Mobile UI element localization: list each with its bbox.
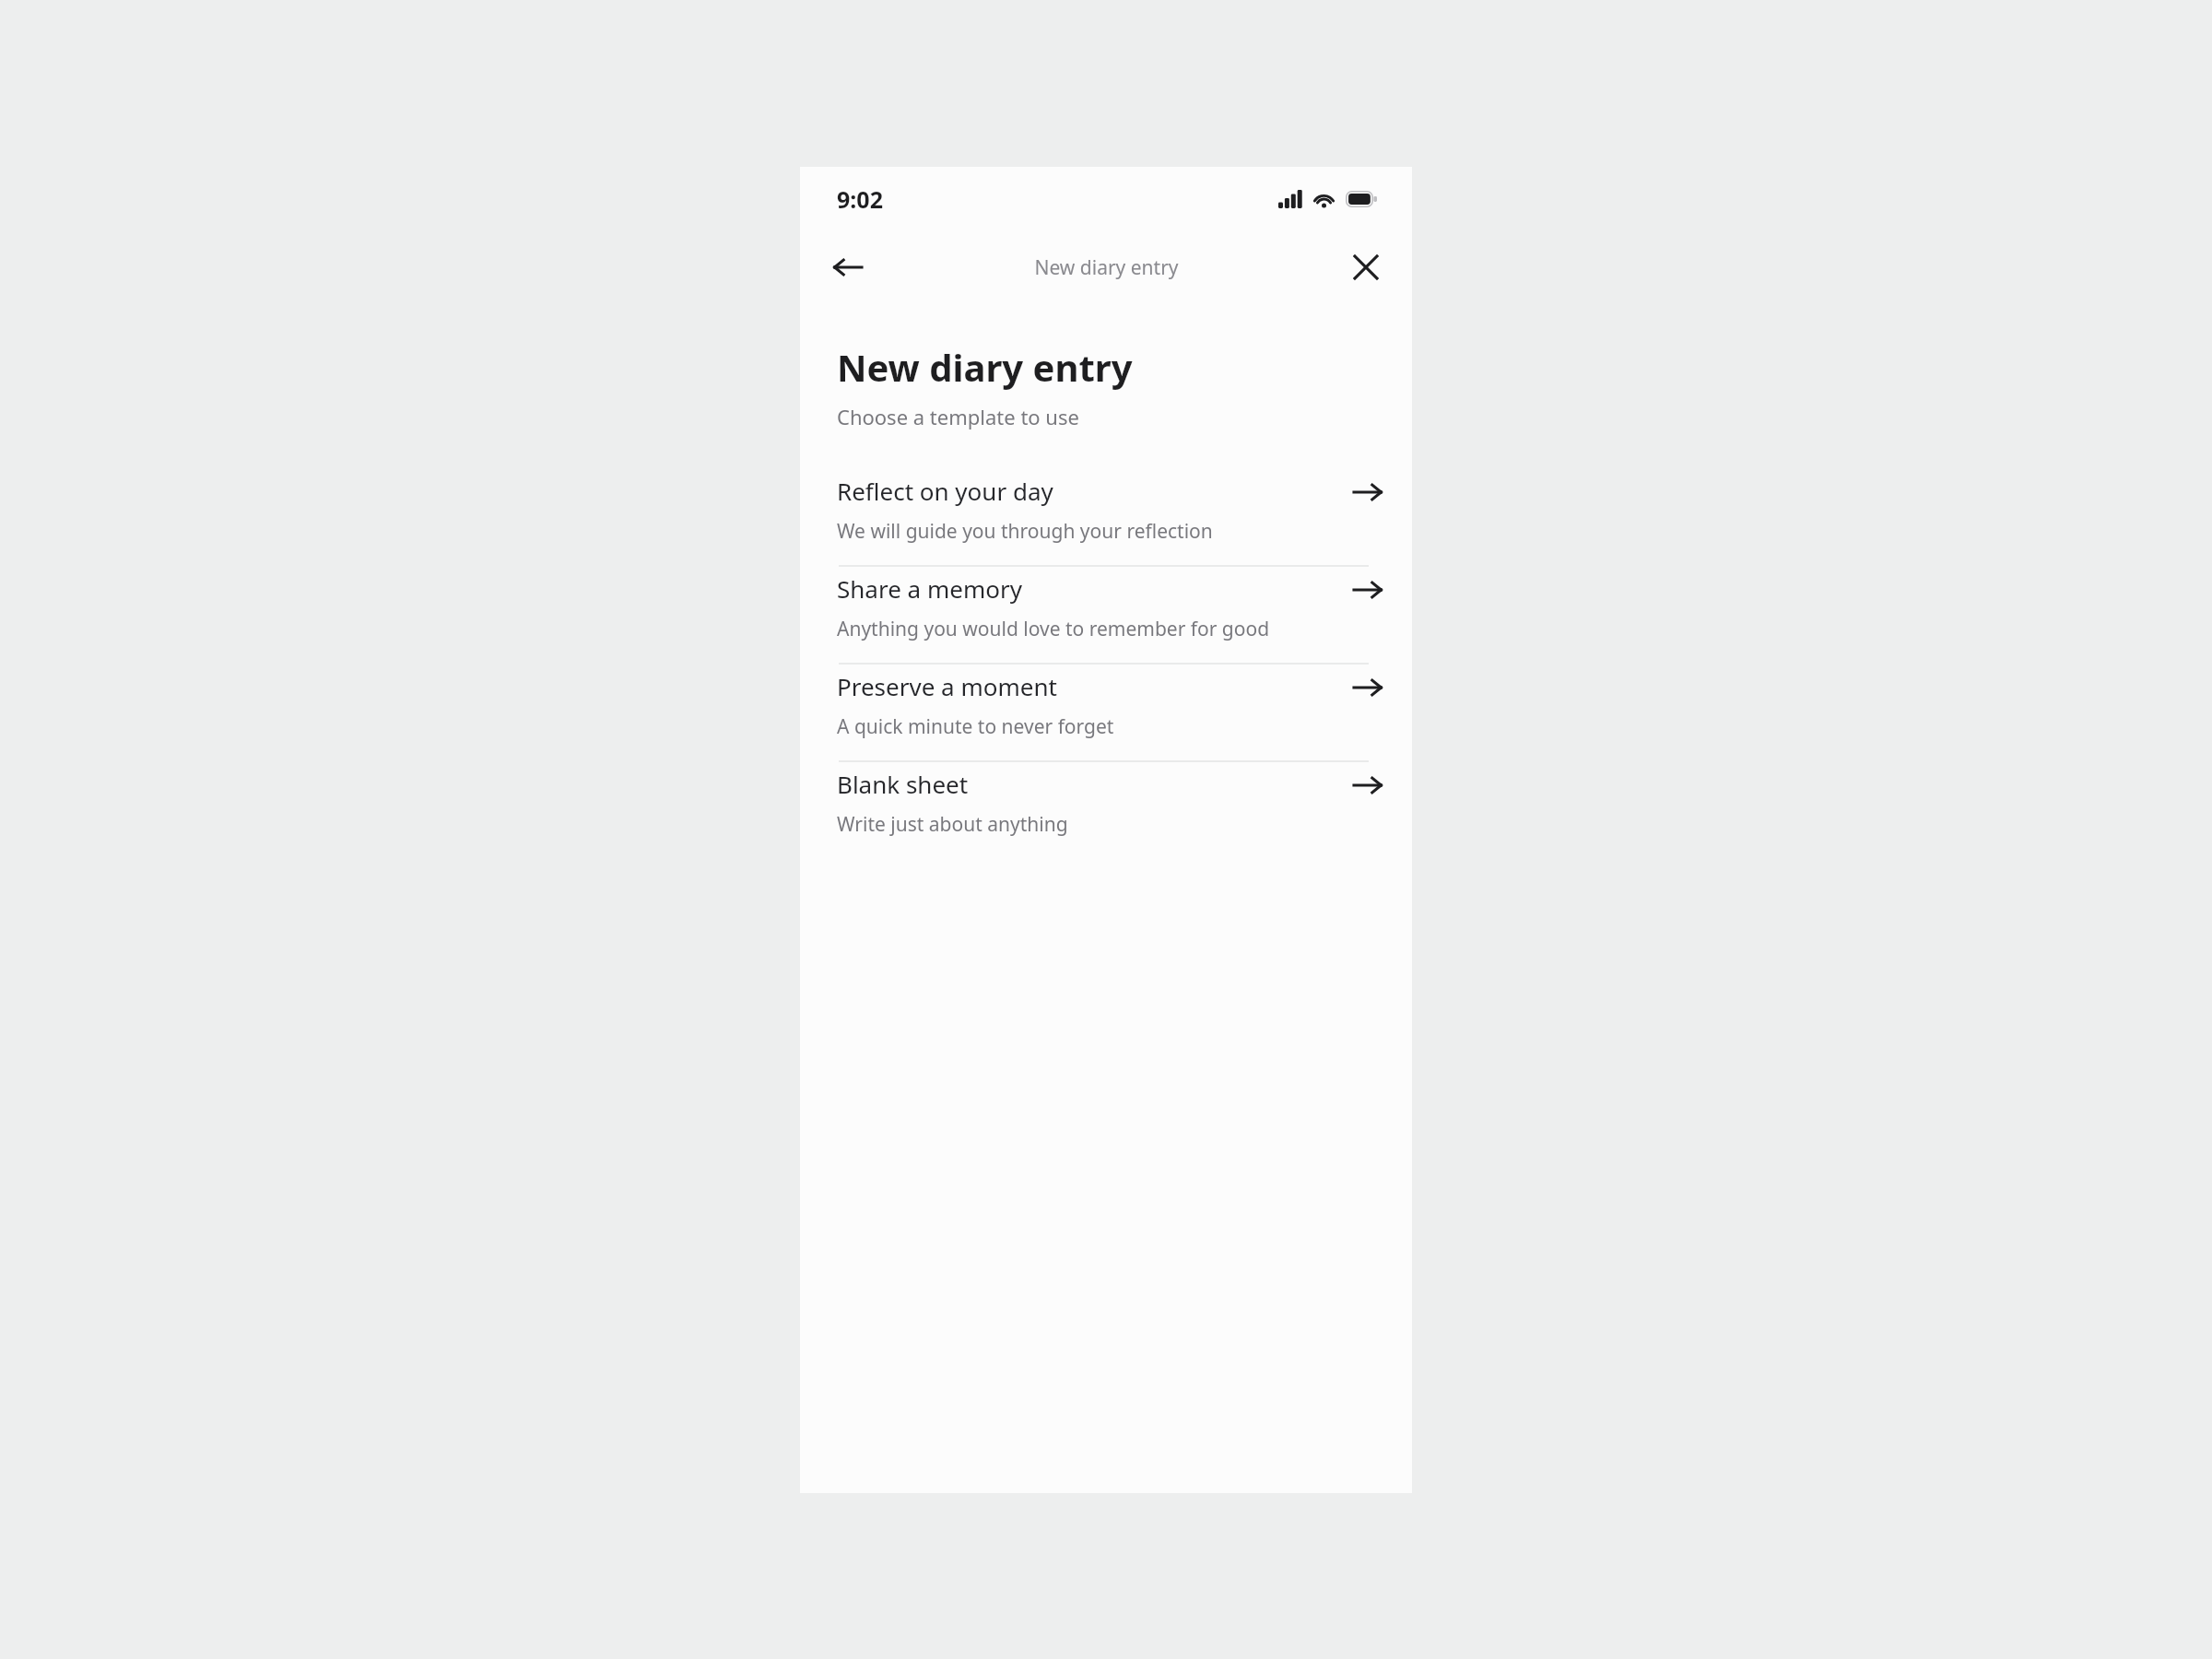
staticText: Choose a template to use — [837, 403, 1079, 430]
button[interactable]: Close — [1340, 241, 1392, 293]
staticText: New diary entry — [1034, 254, 1179, 281]
staticText: Anything you would love to remember for … — [837, 616, 1270, 642]
staticText: We will guide you through your reflectio… — [837, 518, 1213, 545]
staticText: New diary entry — [837, 342, 1133, 392]
button[interactable]: Share a memory — [800, 567, 1412, 663]
staticText: Blank sheet — [837, 768, 969, 800]
button[interactable]: Reflect on your day — [800, 469, 1412, 565]
staticText: Reflect on your day — [837, 475, 1053, 507]
staticText: Share a memory — [837, 572, 1022, 605]
staticText: Write just about anything — [837, 811, 1068, 838]
staticText: 9:02 — [837, 183, 883, 215]
button[interactable]: Preserve a moment — [800, 665, 1412, 760]
staticText: A quick minute to never forget — [837, 713, 1114, 740]
button[interactable]: Blank sheet — [800, 762, 1412, 858]
button[interactable]: Back — [822, 241, 874, 293]
staticText: Preserve a moment — [837, 670, 1057, 702]
